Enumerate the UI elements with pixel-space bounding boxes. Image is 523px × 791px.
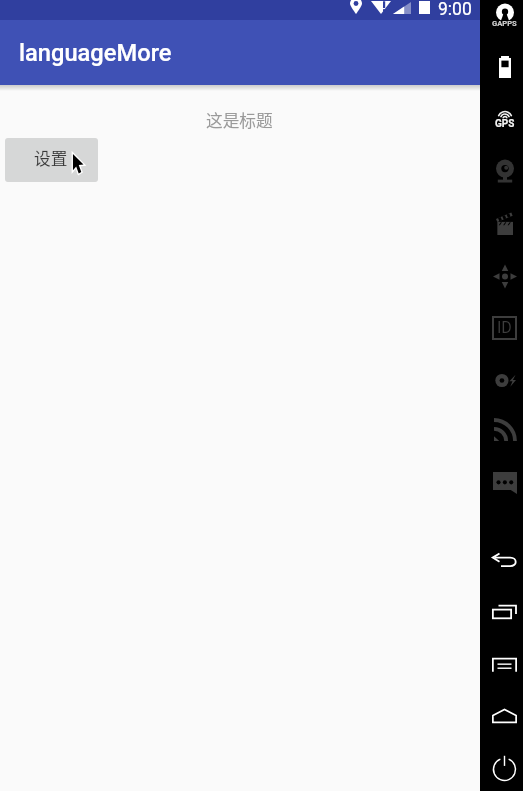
button[interactable]: Back: [480, 549, 523, 571]
staticText: ID: [497, 318, 512, 337]
button[interactable]: Messages: [480, 468, 523, 498]
staticText: 这是标题: [206, 108, 273, 132]
button[interactable]: Webcam: [480, 155, 523, 187]
staticText: 9:00: [438, 0, 472, 19]
button[interactable]: Battery: [480, 52, 523, 82]
button[interactable]: Cellular: [480, 416, 523, 445]
button[interactable]: Screen record: [480, 208, 523, 239]
button[interactable]: Recents: [480, 601, 523, 623]
button[interactable]: NFC: [480, 369, 523, 392]
button[interactable]: Menu: [480, 654, 523, 676]
staticText: languageMore: [19, 39, 172, 67]
staticText: GAPPS: [492, 19, 517, 28]
button[interactable]: Power: [480, 751, 523, 785]
button[interactable]: 设置: [5, 138, 98, 182]
button[interactable]: Device ID: [480, 312, 523, 344]
button[interactable]: D-pad: [480, 261, 523, 292]
staticText: GPS: [495, 118, 515, 130]
button[interactable]: GAPPS button: [480, 0, 523, 25]
staticText: 设置: [34, 146, 68, 170]
button[interactable]: Home: [480, 705, 523, 727]
button[interactable]: GPS: [480, 105, 523, 123]
